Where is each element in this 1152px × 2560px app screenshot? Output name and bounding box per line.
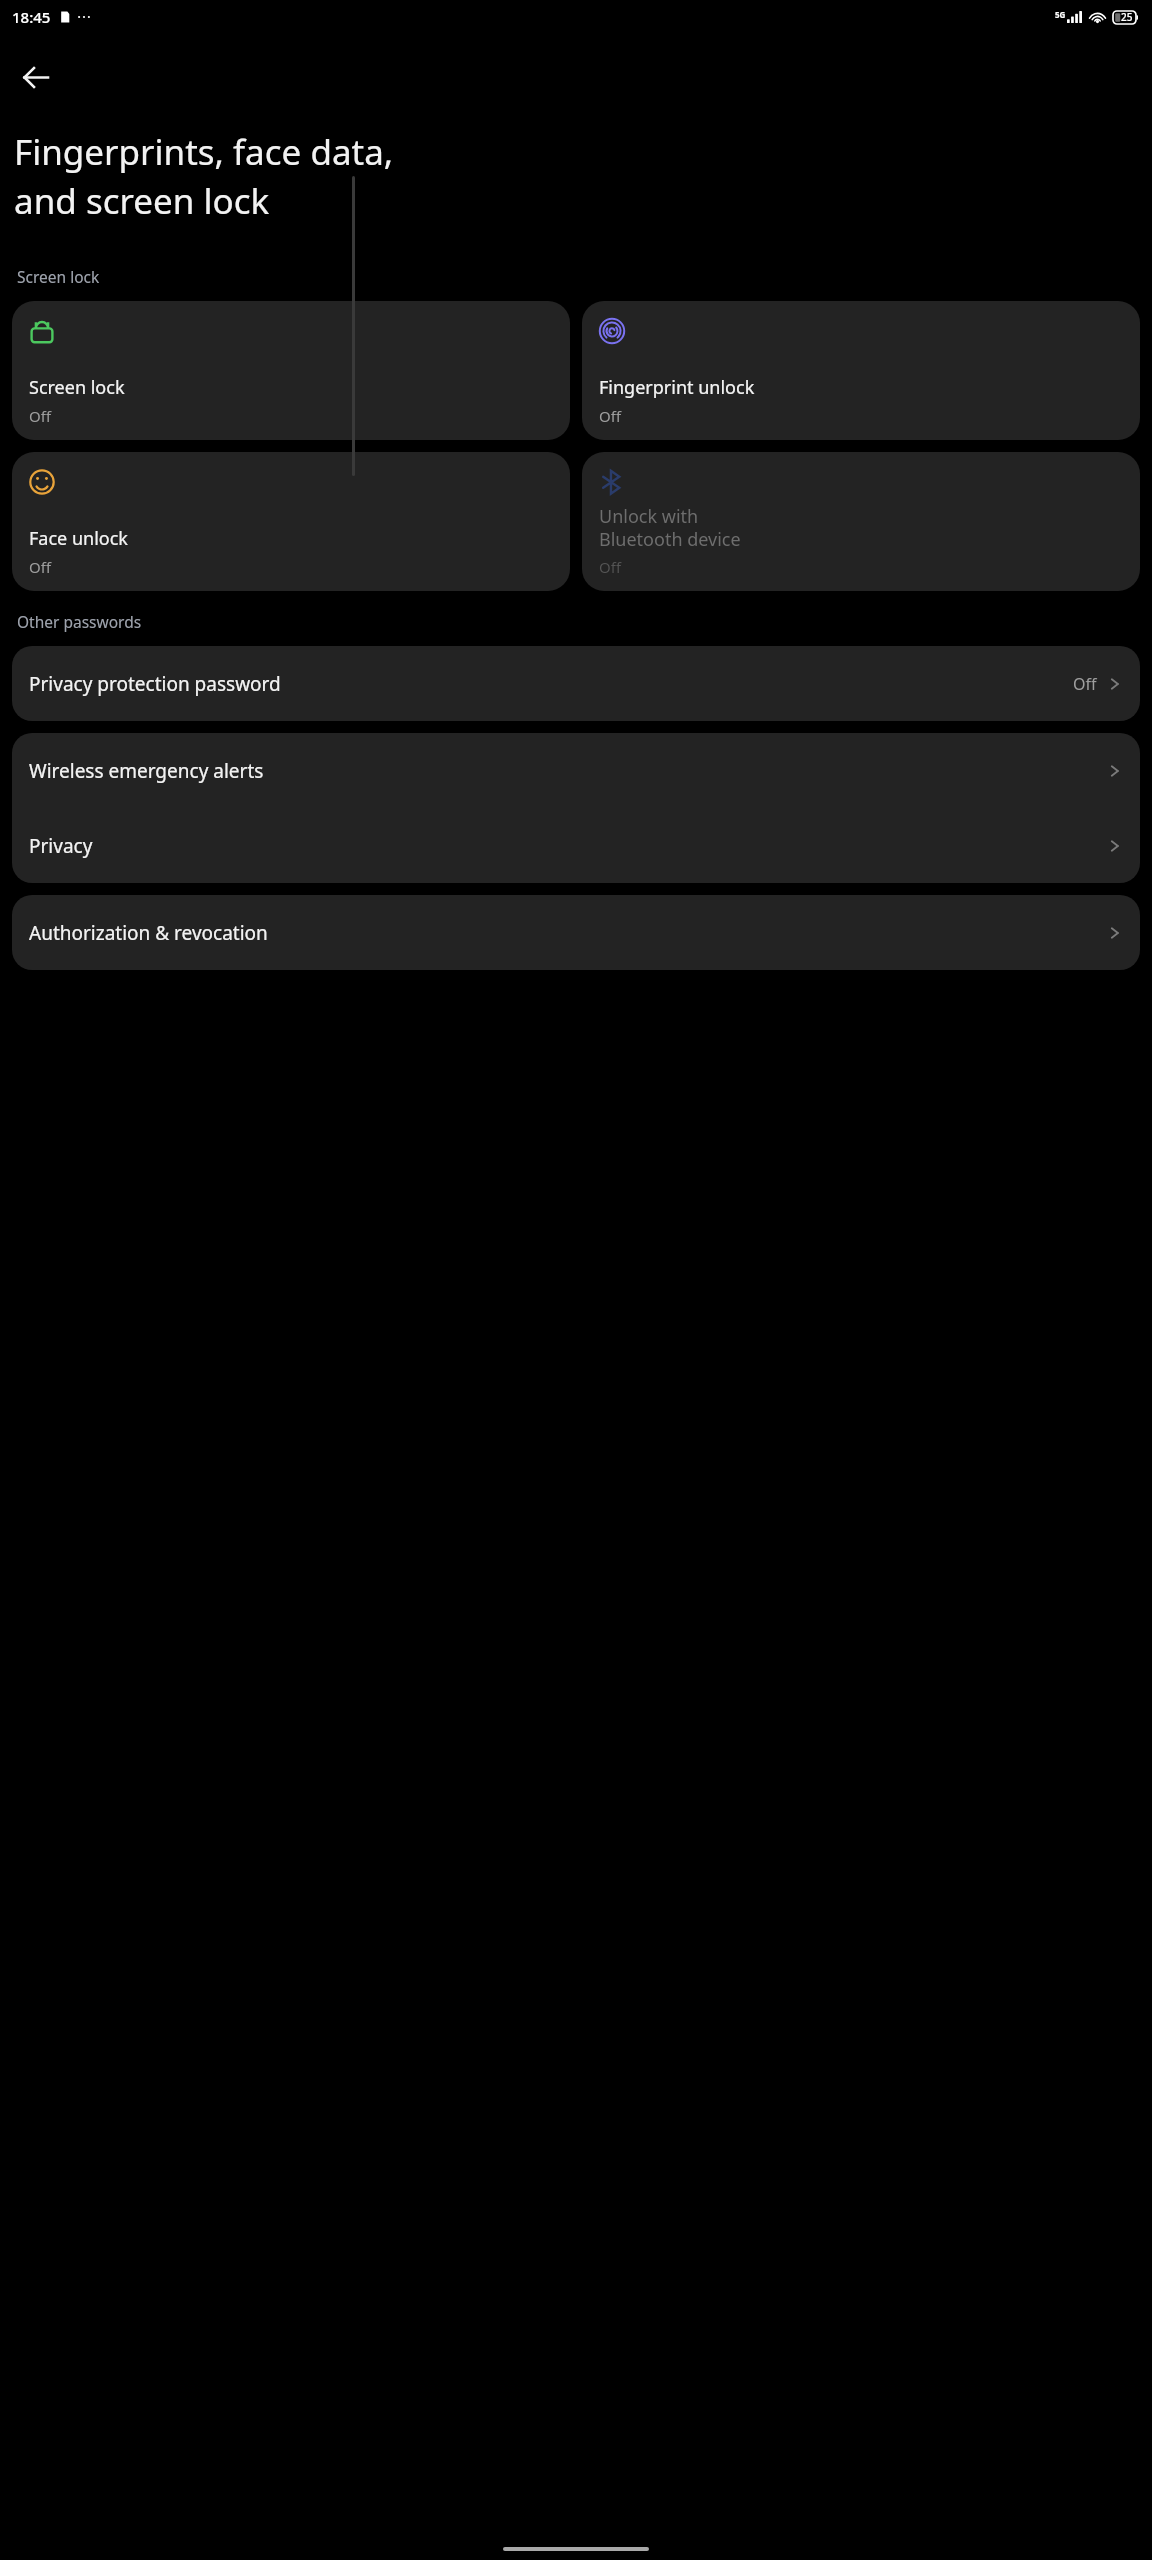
button[interactable]: Unlock with Bluetooth device bbox=[582, 452, 1140, 591]
button[interactable]: Back bbox=[8, 50, 62, 104]
button[interactable]: Privacy protection password bbox=[12, 646, 1140, 721]
staticText: Face unlock bbox=[29, 526, 128, 551]
staticText: Screen lock bbox=[29, 375, 125, 400]
staticText: 18:45 bbox=[12, 7, 51, 27]
staticText: Off bbox=[29, 557, 52, 577]
staticText: 25 bbox=[1121, 10, 1133, 24]
staticText: Off bbox=[1073, 673, 1097, 695]
staticText: Off bbox=[599, 406, 622, 426]
staticText: 5G bbox=[1055, 9, 1066, 20]
staticText: Off bbox=[29, 406, 52, 426]
staticText: Privacy protection password bbox=[29, 671, 281, 697]
staticText: Other passwords bbox=[17, 611, 142, 632]
staticText: Privacy bbox=[29, 833, 93, 859]
button[interactable]: Screen lock bbox=[12, 301, 570, 440]
staticText: Screen lock bbox=[17, 266, 100, 287]
staticText: Authorization & revocation bbox=[29, 920, 268, 946]
button[interactable]: Fingerprint unlock bbox=[582, 301, 1140, 440]
staticText: Fingerprints, face data, and screen lock bbox=[14, 128, 394, 224]
staticText: Wireless emergency alerts bbox=[29, 758, 264, 784]
staticText: Fingerprint unlock bbox=[599, 375, 755, 400]
button[interactable]: Authorization & revocation bbox=[12, 895, 1140, 970]
staticText: Unlock with Bluetooth device bbox=[599, 504, 741, 551]
button[interactable]: Privacy bbox=[12, 808, 1140, 883]
button[interactable]: Face unlock bbox=[12, 452, 570, 591]
button[interactable]: Wireless emergency alerts bbox=[12, 733, 1140, 808]
staticText: Off bbox=[599, 557, 622, 577]
